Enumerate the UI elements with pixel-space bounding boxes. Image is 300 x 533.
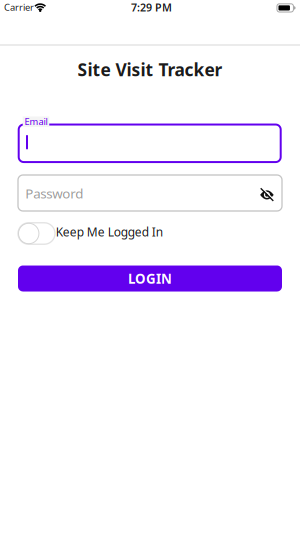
button[interactable]: Password [17,174,283,212]
staticText: 7:29 PM [131,0,172,14]
button[interactable]: LOGIN [18,265,282,291]
staticText: Carrier [4,1,34,13]
staticText: LOGIN [128,270,172,287]
staticText: Site Visit Tracker [77,58,222,81]
button[interactable]: Show password [257,185,279,205]
button[interactable]: Email [17,116,283,164]
staticText: Password [25,184,83,202]
button[interactable]: Keep Me Logged In [17,222,57,245]
staticText: Keep Me Logged In [56,224,163,240]
staticText: Email [24,115,47,128]
